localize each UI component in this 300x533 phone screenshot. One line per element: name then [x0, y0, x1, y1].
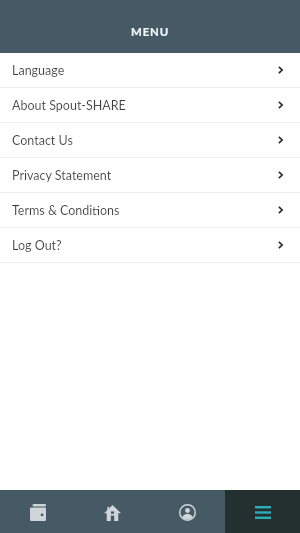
button[interactable]: Privacy Statement	[0, 158, 300, 193]
staticText: Language	[12, 63, 65, 78]
button[interactable]: Profile	[150, 490, 225, 533]
button[interactable]: About Spout-SHARE	[0, 88, 300, 123]
staticText: Log Out?	[12, 238, 62, 253]
button[interactable]: Log Out?	[0, 228, 300, 263]
button[interactable]: Language	[0, 53, 300, 88]
staticText: Privacy Statement	[12, 168, 112, 183]
button[interactable]: Contact Us	[0, 123, 300, 158]
button[interactable]: Menu	[225, 490, 300, 533]
staticText: MENU	[131, 25, 170, 39]
staticText: Terms & Conditions	[12, 203, 120, 218]
button[interactable]: Terms & Conditions	[0, 193, 300, 228]
staticText: Contact Us	[12, 133, 73, 148]
button[interactable]: Wallet	[0, 490, 75, 533]
staticText: About Spout-SHARE	[12, 98, 126, 113]
button[interactable]: Home	[75, 490, 150, 533]
